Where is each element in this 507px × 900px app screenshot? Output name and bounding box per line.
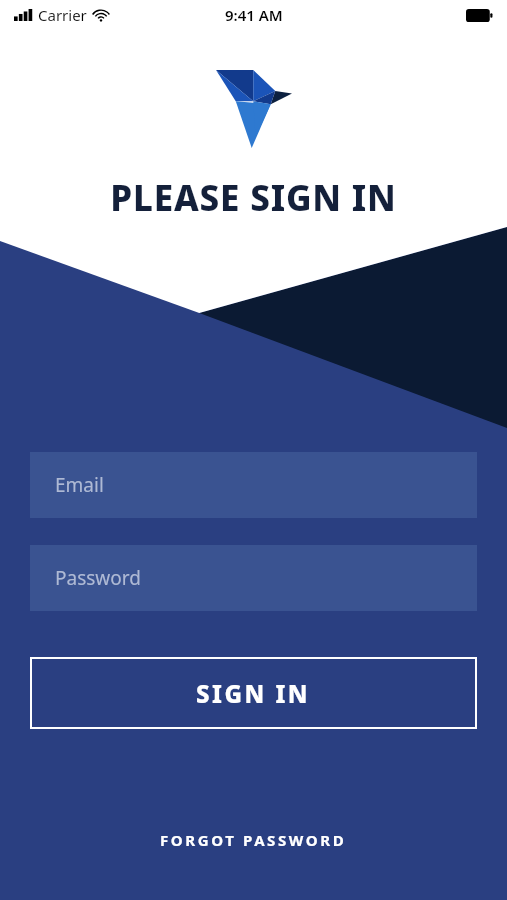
staticText: PLEASE SIGN IN xyxy=(110,174,397,222)
staticText: 9:41 AM xyxy=(225,5,283,25)
staticText: Password xyxy=(55,565,141,591)
button[interactable]: FORGOT PASSWORD xyxy=(142,822,365,858)
button[interactable]: Password xyxy=(30,545,477,611)
staticText: Email xyxy=(55,472,104,498)
staticText: FORGOT PASSWORD xyxy=(160,830,347,850)
button[interactable]: SIGN IN xyxy=(30,657,477,729)
staticText: Carrier xyxy=(38,5,87,25)
other: App logo xyxy=(216,70,292,148)
staticText: SIGN IN xyxy=(196,677,311,710)
button[interactable]: Email xyxy=(30,452,477,518)
